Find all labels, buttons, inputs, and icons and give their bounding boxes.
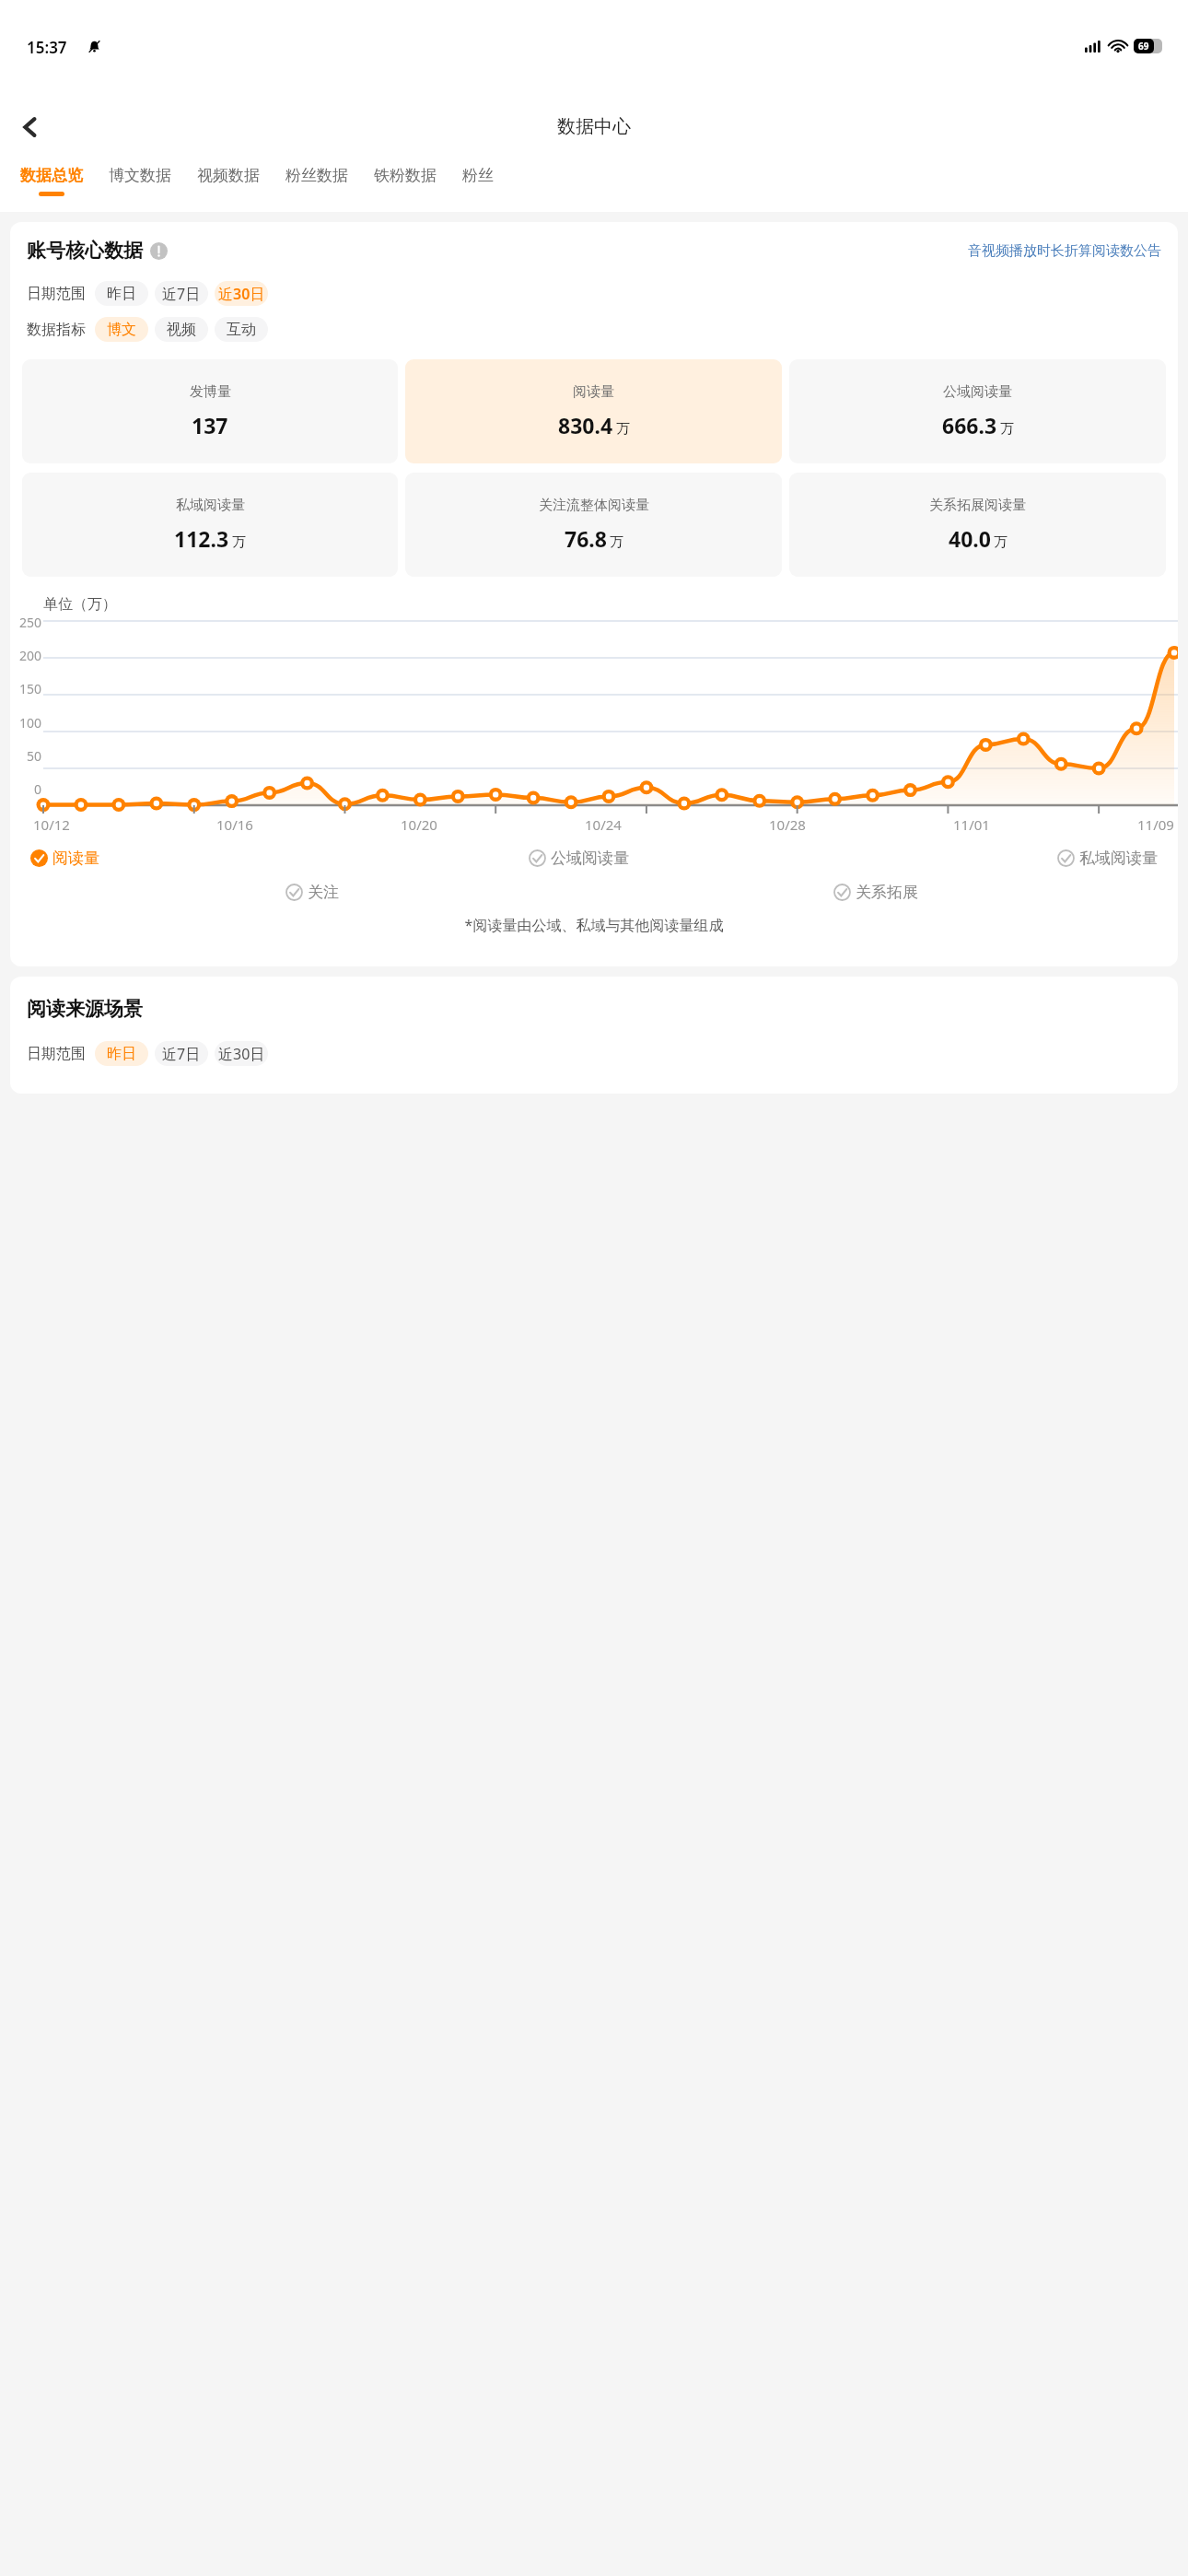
button[interactable]: Back — [9, 106, 52, 148]
staticText: 关注 — [308, 883, 339, 902]
staticText: 昨日 — [107, 1045, 136, 1063]
button[interactable]: 博文数据 — [96, 161, 184, 192]
button[interactable]: 近7日 — [155, 281, 208, 306]
staticText: 10/20 — [401, 815, 437, 834]
staticText: 互动 — [227, 321, 256, 339]
staticText: 日期范围 — [27, 285, 86, 303]
staticText: 日期范围 — [27, 1045, 86, 1063]
staticText: 数据总览 — [20, 166, 83, 185]
staticText: 近7日 — [162, 1044, 201, 1064]
button[interactable]: 视频数据 — [184, 161, 273, 192]
staticText: 视频 — [167, 321, 196, 339]
staticText: 10/24 — [585, 815, 622, 834]
button[interactable]: 博文 — [95, 317, 148, 342]
staticText: 100 — [10, 714, 41, 732]
staticText: 博文数据 — [109, 166, 171, 185]
button[interactable]: 互动 — [215, 317, 268, 342]
staticText: 150 — [10, 680, 41, 697]
button[interactable]: 关系拓展 — [833, 883, 918, 902]
button[interactable]: 说明 — [150, 242, 168, 260]
button[interactable]: 粉丝 — [449, 161, 507, 192]
staticText: 博文 — [107, 321, 136, 339]
staticText: 69 — [1138, 40, 1149, 53]
staticText: 40.0 — [949, 524, 991, 553]
staticText: 粉丝 — [462, 166, 494, 185]
staticText: 830.4 — [558, 411, 613, 439]
staticText: 视频数据 — [197, 166, 260, 185]
staticText: 关注流整体阅读量 — [539, 497, 649, 514]
staticText: 250 — [10, 614, 41, 631]
staticText: 发博量 — [190, 383, 231, 401]
staticText: 万 — [1000, 420, 1014, 438]
staticText: 私域阅读量 — [176, 497, 245, 514]
button[interactable]: 近7日 — [155, 1041, 208, 1066]
staticText: 76.8 — [565, 524, 607, 553]
staticText: 近7日 — [162, 284, 201, 304]
staticText: 15:37 — [27, 37, 67, 58]
staticText: 近30日 — [218, 1044, 265, 1064]
staticText: 11/01 — [953, 815, 990, 834]
staticText: 137 — [192, 411, 228, 439]
button[interactable]: 关注流整体阅读量 — [405, 473, 782, 577]
staticText: 关系拓展 — [856, 883, 918, 902]
button[interactable]: 近30日 — [215, 281, 268, 306]
staticText: 账号核心数据 — [27, 239, 143, 263]
button[interactable]: 粉丝数据 — [273, 161, 361, 192]
staticText: 11/09 — [1137, 815, 1174, 834]
staticText: 单位（万） — [43, 595, 117, 614]
button[interactable]: 昨日 — [95, 1041, 148, 1066]
button[interactable]: 近30日 — [215, 1041, 268, 1066]
staticText: 万 — [232, 533, 246, 551]
staticText: 数据指标 — [27, 321, 86, 339]
button[interactable]: 公域阅读量 — [529, 849, 629, 868]
staticText: 数据中心 — [557, 115, 631, 138]
staticText: 10/28 — [769, 815, 806, 834]
staticText: 10/16 — [216, 815, 253, 834]
staticText: 铁粉数据 — [374, 166, 437, 185]
staticText: 万 — [610, 533, 623, 551]
button[interactable]: 音视频播放时长折算阅读数公告 — [968, 242, 1161, 260]
button[interactable]: 阅读量 — [405, 359, 782, 463]
staticText: *阅读量由公域、私域与其他阅读量组成 — [10, 915, 1178, 935]
staticText: 50 — [10, 747, 41, 765]
staticText: 昨日 — [107, 285, 136, 303]
staticText: 粉丝数据 — [285, 166, 348, 185]
button[interactable]: 关系拓展阅读量 — [789, 473, 1166, 577]
button[interactable]: 私域阅读量 — [1057, 849, 1158, 868]
staticText: 万 — [994, 533, 1007, 551]
staticText: 公域阅读量 — [943, 383, 1012, 401]
staticText: 阅读量 — [52, 849, 99, 868]
staticText: 10/12 — [33, 815, 70, 834]
button[interactable]: 阅读量 — [30, 849, 99, 868]
staticText: 0 — [10, 780, 41, 798]
button[interactable]: 视频 — [155, 317, 208, 342]
button[interactable]: 公域阅读量 — [789, 359, 1166, 463]
staticText: 公域阅读量 — [551, 849, 629, 868]
staticText: 200 — [10, 647, 41, 664]
staticText: 阅读量 — [573, 383, 614, 401]
button[interactable]: 铁粉数据 — [361, 161, 449, 192]
staticText: 112.3 — [174, 524, 229, 553]
staticText: 关系拓展阅读量 — [929, 497, 1026, 514]
button[interactable]: 发博量 — [22, 359, 398, 463]
staticText: 万 — [616, 420, 630, 438]
staticText: 私域阅读量 — [1079, 849, 1158, 868]
staticText: 阅读来源场景 — [27, 997, 143, 1021]
button[interactable]: 私域阅读量 — [22, 473, 398, 577]
button[interactable]: 昨日 — [95, 281, 148, 306]
staticText: 666.3 — [942, 411, 997, 439]
staticText: 近30日 — [218, 284, 265, 304]
button[interactable]: 关注 — [285, 883, 339, 902]
button[interactable]: 数据总览 — [7, 161, 96, 196]
